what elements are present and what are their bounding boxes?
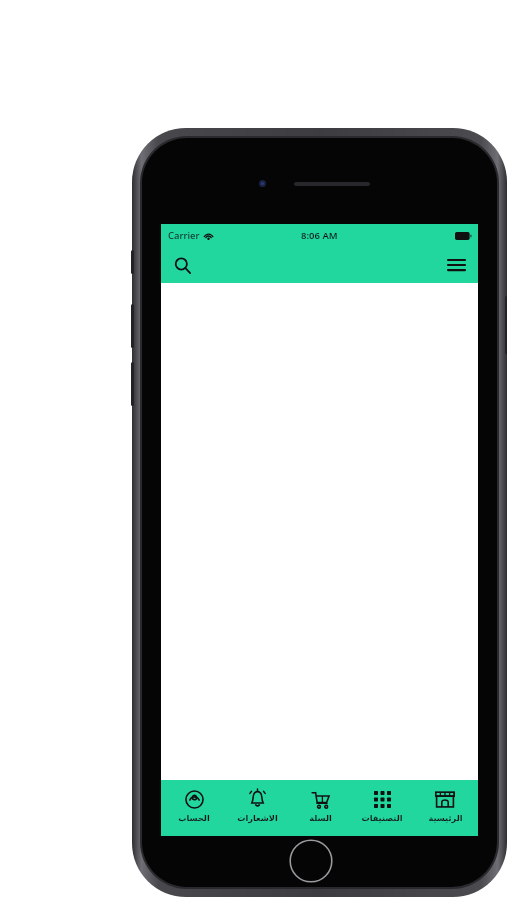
button[interactable]: السلة bbox=[290, 780, 350, 836]
staticText: Carrier bbox=[168, 229, 200, 242]
button[interactable]: Search bbox=[165, 248, 199, 282]
button[interactable]: الاشعارات bbox=[227, 780, 287, 836]
button[interactable]: الحساب bbox=[164, 780, 224, 836]
button[interactable]: الرئيسية bbox=[415, 780, 475, 836]
staticText: 8:06 AM bbox=[301, 229, 338, 242]
staticText: السلة bbox=[309, 813, 332, 823]
staticText: التصنيفات bbox=[361, 813, 403, 823]
button[interactable]: Menu bbox=[439, 248, 473, 282]
staticText: الحساب bbox=[178, 813, 210, 823]
staticText: الاشعارات bbox=[237, 813, 278, 823]
staticText: الرئيسية bbox=[428, 813, 463, 823]
button[interactable]: التصنيفات bbox=[352, 780, 412, 836]
